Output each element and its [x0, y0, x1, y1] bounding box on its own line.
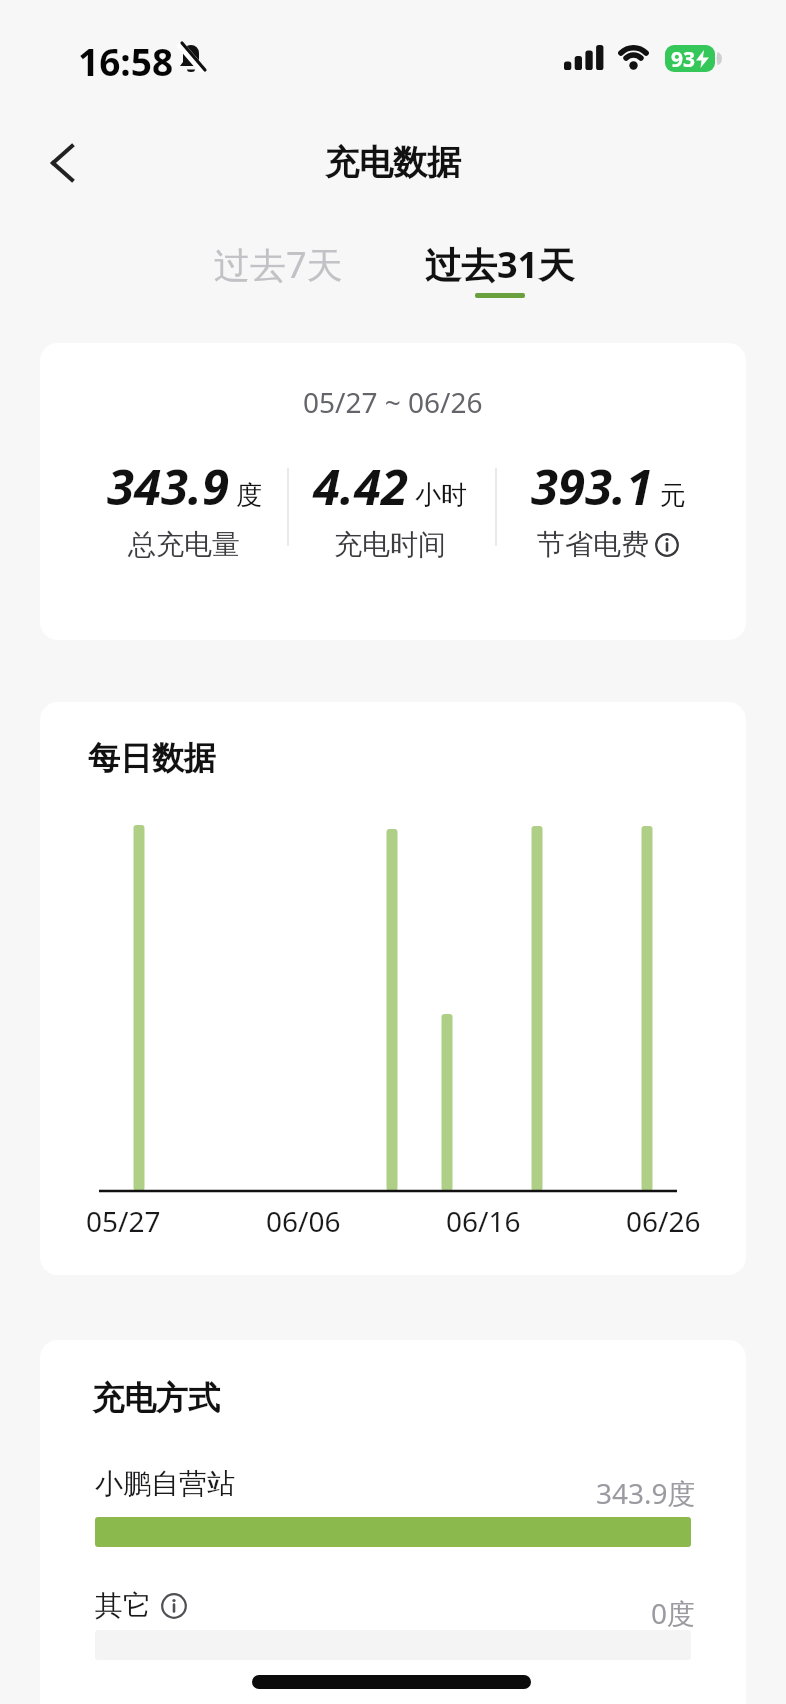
staticText: 小鹏自营站: [95, 1466, 235, 1501]
staticText: 节省电费: [537, 527, 649, 562]
staticText: 4.42: [313, 453, 409, 520]
staticText: 过去31天: [425, 240, 575, 289]
staticText: 0度: [651, 1594, 696, 1632]
staticText: 过去7天: [214, 240, 343, 289]
button[interactable]: 过去31天: [400, 229, 600, 299]
staticText: 其它: [95, 1588, 151, 1623]
staticText: 充电方式: [92, 1378, 220, 1418]
staticText: 393.1: [531, 453, 654, 520]
staticText: 元: [660, 479, 686, 512]
staticText: 06/16: [446, 1202, 521, 1240]
staticText: 16:58: [78, 36, 174, 86]
staticText: 充电时间: [334, 527, 446, 562]
staticText: 总充电量: [128, 527, 240, 562]
button[interactable]: [655, 533, 679, 557]
button[interactable]: [161, 1593, 187, 1619]
staticText: 06/26: [626, 1202, 701, 1240]
staticText: 充电数据: [325, 141, 461, 184]
staticText: 度: [236, 479, 262, 512]
staticText: 06/06: [266, 1202, 341, 1240]
button[interactable]: 过去7天: [180, 229, 376, 299]
staticText: 343.9: [107, 453, 230, 520]
staticText: 343.9度: [596, 1474, 696, 1512]
staticText: 小时: [415, 479, 467, 512]
staticText: 每日数据: [88, 738, 216, 778]
staticText: 93: [671, 45, 696, 72]
staticText: 05/27: [86, 1202, 161, 1240]
button[interactable]: [28, 130, 96, 196]
staticText: 05/27 ~ 06/26: [303, 383, 483, 421]
